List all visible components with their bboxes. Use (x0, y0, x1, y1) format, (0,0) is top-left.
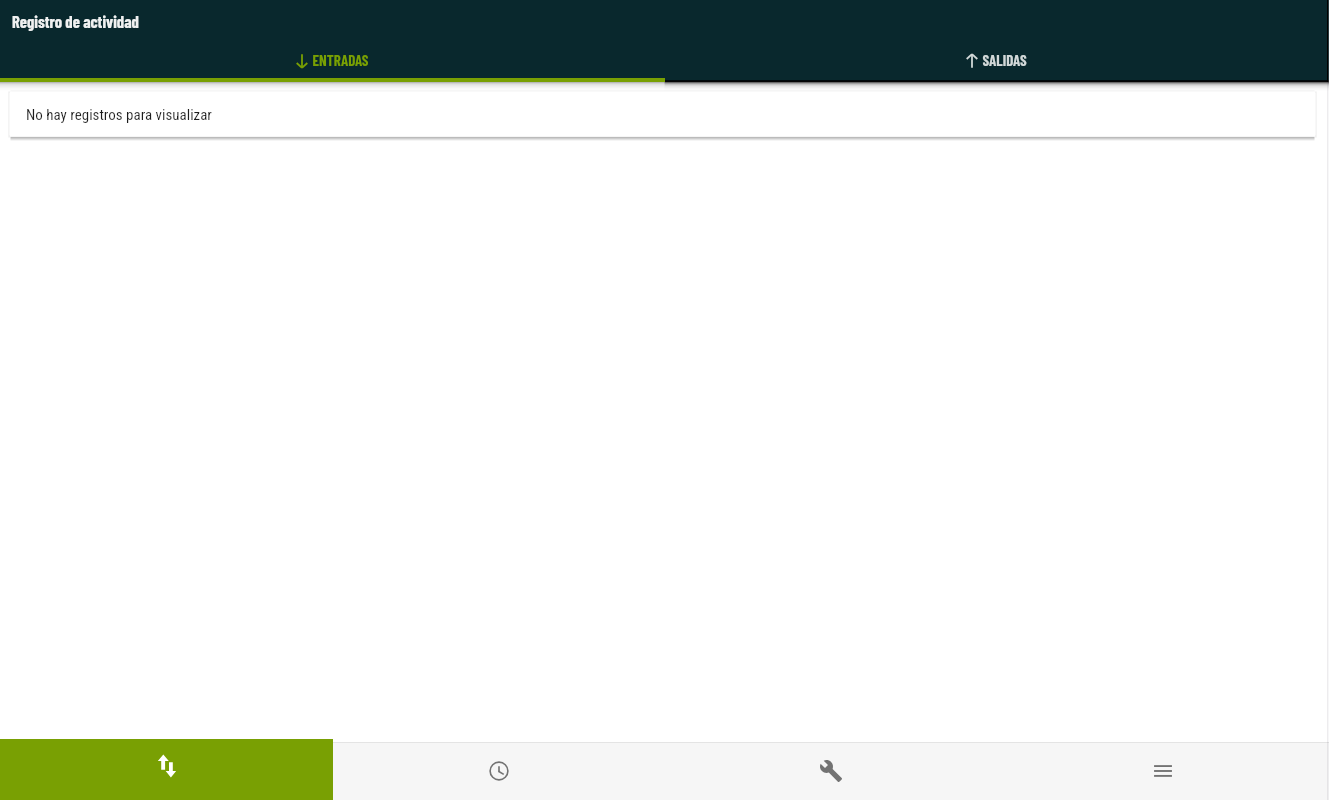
staticText: ENTRADAS (312, 51, 369, 69)
button[interactable]: No hay registros para visualizar (10, 92, 1316, 137)
staticText: No hay registros para visualizar (26, 106, 212, 124)
button[interactable]: Ajustes (665, 739, 997, 800)
staticText: SALIDAS (982, 51, 1027, 69)
button[interactable]: Menu (997, 739, 1329, 800)
button[interactable]: SALIDAS (664, 41, 1329, 78)
button[interactable]: Movimientos (0, 739, 333, 800)
button[interactable]: ENTRADAS (0, 41, 664, 78)
staticText: Registro de actividad (12, 11, 139, 31)
button[interactable]: Historial (333, 739, 665, 800)
